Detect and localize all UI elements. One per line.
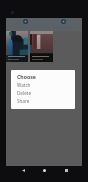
staticText: Share [17, 98, 30, 104]
button[interactable]: Choose [11, 73, 75, 80]
button[interactable]: Home [39, 165, 49, 175]
button[interactable] [6, 31, 28, 62]
button[interactable]: Watch [11, 81, 75, 89]
button[interactable]: Back [18, 165, 28, 175]
staticText: Choose [17, 73, 36, 80]
staticText: Watch [17, 82, 31, 88]
button[interactable]: Download [6, 18, 44, 31]
button[interactable]: Recent apps [61, 165, 71, 175]
button[interactable] [30, 31, 53, 62]
staticText: Delete [17, 90, 31, 96]
button[interactable]: Delete [11, 89, 75, 97]
button[interactable]: Downloaded [44, 18, 82, 31]
button[interactable]: Share [11, 97, 75, 105]
